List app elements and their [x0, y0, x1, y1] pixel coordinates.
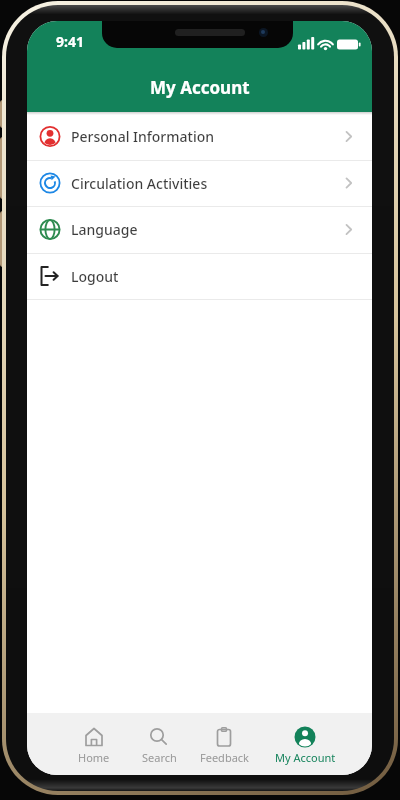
button[interactable]: Home [61, 713, 127, 775]
staticText: Search [142, 750, 177, 765]
staticText: Logout [71, 267, 119, 286]
staticText: Home [78, 750, 110, 765]
staticText: Personal Information [71, 127, 215, 146]
staticText: Language [71, 220, 138, 239]
button[interactable]: Feedback [191, 713, 257, 775]
staticText: My Account [150, 76, 250, 99]
button[interactable]: Language [27, 206, 372, 253]
button[interactable]: Logout [27, 253, 372, 300]
staticText: Circulation Activities [71, 174, 208, 193]
staticText: My Account [275, 750, 336, 765]
button[interactable]: Search [126, 713, 192, 775]
staticText: 9:41 [56, 32, 84, 51]
button[interactable]: My Account [272, 713, 338, 775]
button[interactable]: Circulation Activities [27, 160, 372, 207]
staticText: Feedback [200, 750, 249, 765]
button[interactable]: Personal Information [27, 113, 372, 160]
